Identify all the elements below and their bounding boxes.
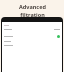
staticText: Advanced (19, 3, 46, 10)
button[interactable] (4, 35, 60, 38)
staticText: filtration (20, 11, 45, 18)
